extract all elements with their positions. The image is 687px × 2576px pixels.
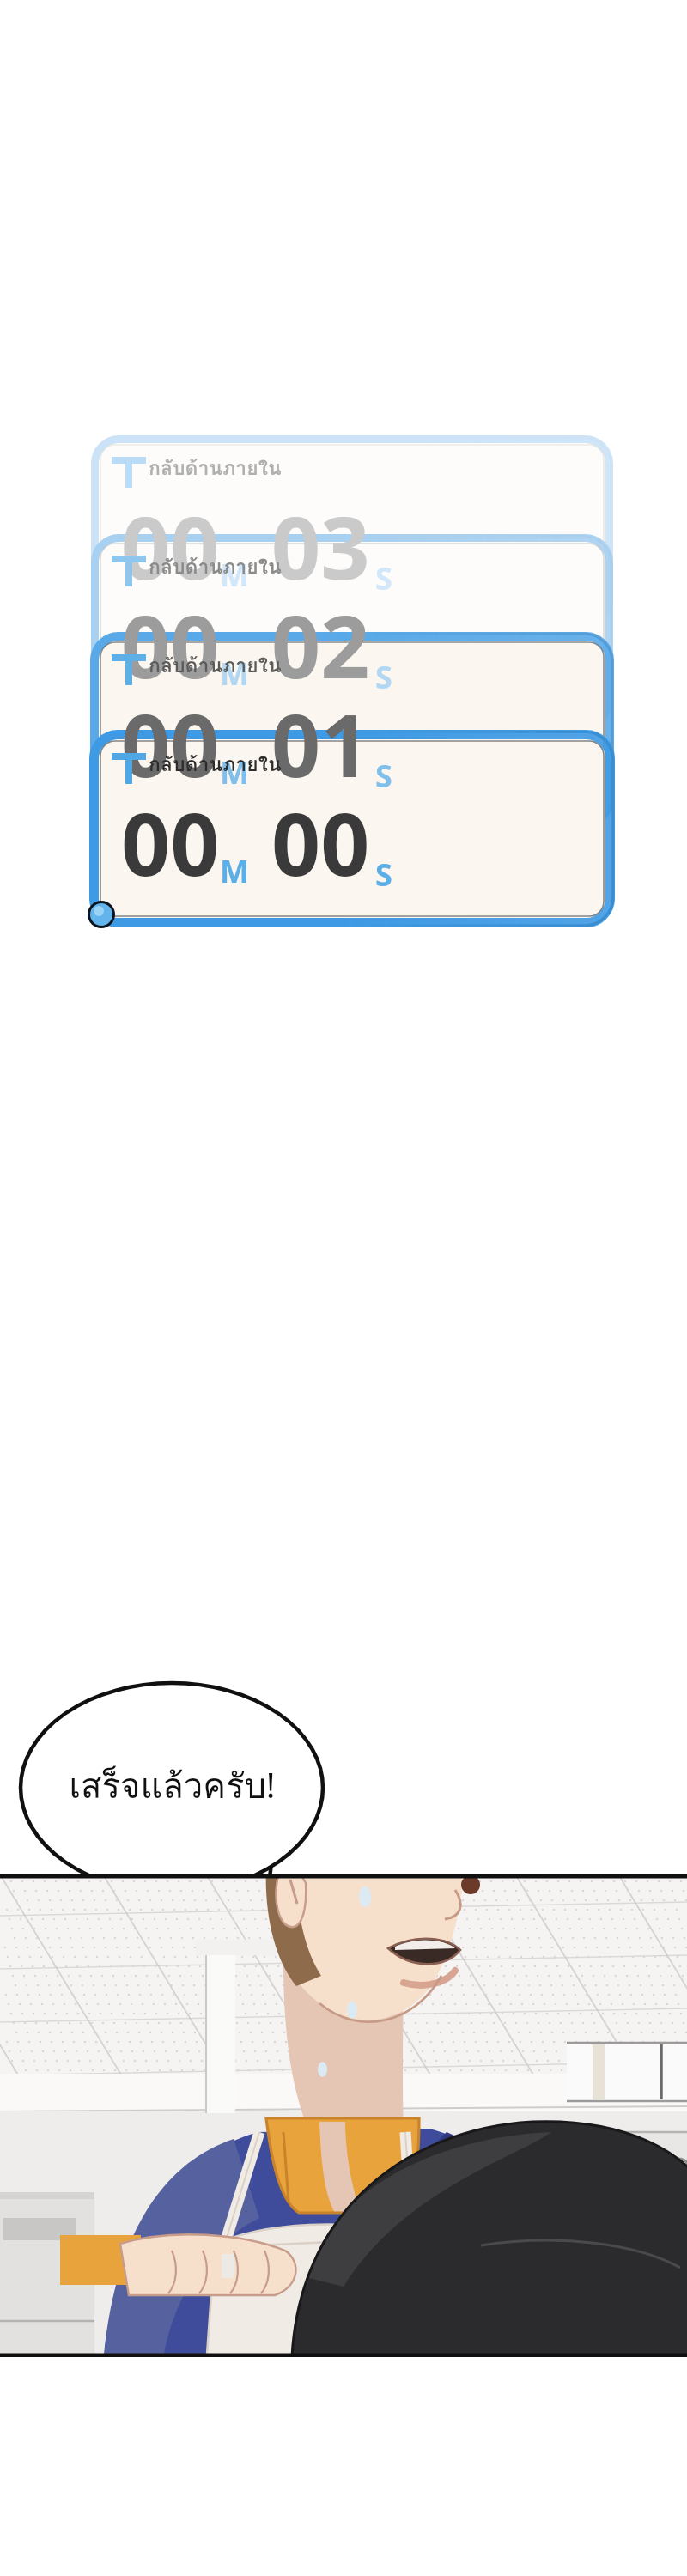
other: Timer xyxy=(111,746,147,782)
button[interactable]: Timer xyxy=(99,443,605,622)
staticText: M xyxy=(220,751,249,793)
staticText: กลับด้านภายใน xyxy=(149,749,282,781)
staticText: S xyxy=(375,854,392,896)
staticText: 01 xyxy=(271,685,370,802)
staticText: กลับด้านภายใน xyxy=(149,551,282,583)
other: Timer xyxy=(111,549,147,585)
staticText: 00 xyxy=(121,586,220,703)
staticText: 00 xyxy=(121,784,220,901)
staticText: S xyxy=(375,656,392,698)
staticText: 00 xyxy=(121,685,220,802)
staticText: 00 xyxy=(121,488,220,605)
button[interactable]: Timer xyxy=(99,641,605,819)
staticText: 00 xyxy=(271,784,370,901)
staticText: M xyxy=(220,554,249,596)
staticText: S xyxy=(375,755,392,797)
other: Timer xyxy=(111,450,147,486)
staticText: กลับด้านภายใน xyxy=(149,650,282,682)
button[interactable]: Timer xyxy=(99,739,605,918)
other: Timer xyxy=(111,647,147,683)
staticText: M xyxy=(220,850,249,892)
staticText: S xyxy=(375,557,392,599)
button[interactable]: Timer xyxy=(99,542,605,720)
staticText: 02 xyxy=(271,586,370,703)
staticText: 03 xyxy=(271,488,370,605)
staticText: M xyxy=(220,653,249,695)
staticText: เสร็จแล้วครับ! xyxy=(69,1759,276,1814)
staticText: กลับด้านภายใน xyxy=(149,453,282,484)
